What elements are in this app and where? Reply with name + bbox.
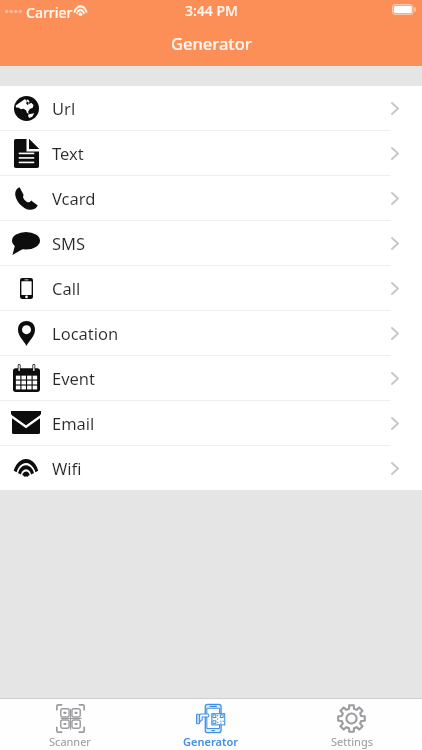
staticText: Url [52, 97, 76, 119]
staticText: Email [52, 412, 95, 434]
staticText: Location [52, 322, 119, 344]
button[interactable]: Scanner [0, 699, 140, 750]
button[interactable]: Event [0, 356, 422, 400]
button[interactable]: Email [0, 401, 422, 445]
staticText: Call [52, 277, 81, 299]
staticText: 3:44 PM [185, 1, 238, 20]
staticText: Wifi [52, 457, 82, 479]
button[interactable]: Location [0, 311, 422, 355]
staticText: Event [52, 367, 96, 389]
button[interactable]: Settings [281, 699, 422, 750]
button[interactable]: Generator [140, 699, 281, 750]
button[interactable]: Vcard [0, 176, 422, 220]
staticText: Text [52, 142, 84, 164]
staticText: Scanner [49, 734, 91, 749]
staticText: Generator [183, 734, 238, 749]
button[interactable]: Call [0, 266, 422, 310]
staticText: Generator [171, 32, 252, 54]
button[interactable]: Text [0, 131, 422, 175]
staticText: Carrier [26, 3, 73, 22]
staticText: Settings [331, 734, 373, 749]
staticText: Vcard [52, 187, 96, 209]
button[interactable]: Url [0, 86, 422, 130]
button[interactable]: Wifi [0, 446, 422, 490]
staticText: SMS [52, 232, 86, 254]
button[interactable]: SMS [0, 221, 422, 265]
